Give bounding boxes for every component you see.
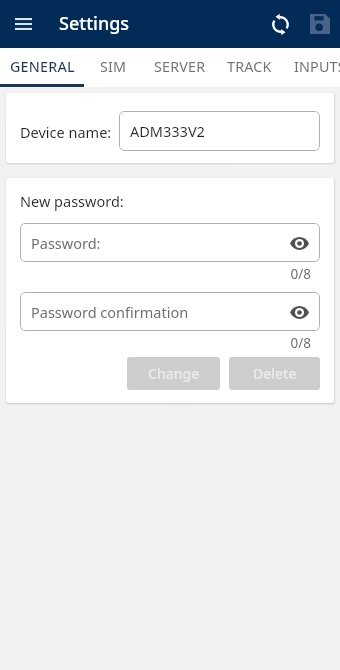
button[interactable]: Sync: [260, 0, 300, 48]
button[interactable]: Save: [300, 0, 340, 48]
staticText: Settings: [59, 11, 130, 36]
staticText: Change: [148, 364, 200, 383]
button[interactable]: SERVER: [142, 48, 218, 87]
staticText: New password:: [20, 191, 124, 211]
button[interactable]: TRACK: [218, 48, 281, 87]
button[interactable]: Password:: [20, 223, 320, 262]
button[interactable]: INPUTS: [281, 48, 340, 87]
staticText: TRACK: [227, 57, 272, 76]
staticText: 0/8: [20, 265, 311, 283]
button[interactable]: Password confirmation: [20, 292, 320, 331]
staticText: ADM333V2: [130, 121, 205, 141]
button[interactable]: Change: [127, 357, 220, 390]
staticText: GENERAL: [10, 57, 75, 76]
staticText: SIM: [100, 57, 127, 76]
button[interactable]: Show password: [285, 298, 313, 326]
button[interactable]: ADM333V2: [119, 111, 320, 151]
button[interactable]: GENERAL: [0, 48, 84, 87]
staticText: Password confirmation: [31, 302, 189, 322]
staticText: Delete: [253, 364, 297, 383]
staticText: SERVER: [154, 57, 206, 76]
button[interactable]: Open navigation menu: [5, 6, 41, 42]
button[interactable]: Delete: [229, 357, 320, 390]
staticText: INPUTS: [294, 57, 340, 76]
button[interactable]: Show password: [285, 229, 313, 257]
button[interactable]: SIM: [84, 48, 142, 87]
staticText: 0/8: [20, 334, 311, 352]
staticText: Device name:: [20, 122, 112, 142]
staticText: Password:: [31, 233, 101, 253]
